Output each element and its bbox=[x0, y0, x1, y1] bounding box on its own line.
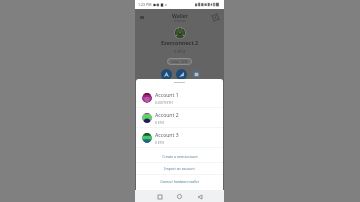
button[interactable]: Home bbox=[174, 191, 185, 202]
button[interactable]: Create a new account bbox=[136, 150, 223, 162]
button[interactable]: Receive bbox=[176, 69, 187, 80]
staticText: 0 ETH bbox=[155, 120, 165, 125]
staticText: 0.0079 ETH bbox=[155, 100, 173, 105]
button[interactable]: Buy bbox=[191, 69, 202, 80]
staticText: Connect hardware wallet bbox=[160, 179, 199, 184]
button[interactable]: Account 3 bbox=[136, 128, 223, 148]
staticText: Ethereum bbox=[174, 19, 186, 23]
button[interactable]: Back bbox=[194, 191, 205, 202]
staticText: Import an account bbox=[164, 166, 195, 171]
staticText: 0 ETH bbox=[155, 140, 165, 145]
button[interactable]: Account 1 bbox=[136, 88, 223, 108]
button[interactable]: Network bbox=[211, 13, 220, 22]
staticText: Account 2 bbox=[155, 112, 179, 119]
button[interactable]: Connect hardware wallet bbox=[136, 175, 223, 187]
staticText: Create a new account bbox=[162, 154, 198, 159]
staticText: 0x0a3...92fF bbox=[171, 60, 188, 64]
staticText: 1:23 PM bbox=[138, 2, 152, 7]
button[interactable]: Send bbox=[161, 69, 172, 80]
button[interactable]: Account 2 bbox=[136, 108, 223, 128]
staticText: Account 1 bbox=[155, 92, 179, 99]
staticText: Account 3 bbox=[155, 132, 179, 139]
button[interactable]: Recents bbox=[154, 191, 165, 202]
staticText: 0 ETH bbox=[174, 49, 186, 55]
staticText: Ezerconnect 2 bbox=[161, 39, 199, 46]
button[interactable]: 0x0a3...92fF bbox=[167, 58, 192, 65]
button[interactable]: Menu bbox=[138, 13, 146, 21]
staticText: Wallet bbox=[172, 12, 188, 19]
button[interactable]: Import an account bbox=[136, 162, 223, 174]
